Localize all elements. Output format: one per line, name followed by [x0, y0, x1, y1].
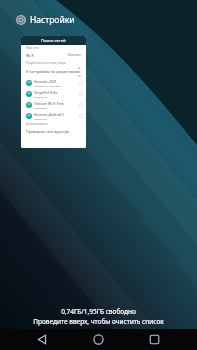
- staticText: Поиск сетей: [41, 38, 66, 44]
- button[interactable]: Проверить сеть вручную: [21, 127, 86, 136]
- staticText: Подключаться к сетям, когда: [26, 61, 66, 65]
- button[interactable]: Home: [85, 329, 111, 350]
- staticText: Keenetic-4941: [34, 79, 57, 84]
- staticText: Включено: [68, 53, 81, 57]
- staticText: Проверить сеть вручную: [26, 129, 70, 134]
- staticText: Настройки: [30, 14, 75, 26]
- staticText: доступно: [78, 66, 81, 77]
- button[interactable]: Поиск сетей: [21, 36, 86, 148]
- staticText: Telecom Wi-Fi Free: [34, 101, 64, 106]
- staticText: Защищено: [34, 95, 48, 98]
- staticText: Сохранено, защищено: [34, 84, 62, 87]
- button[interactable]: Keenetic-Android 5: [21, 110, 86, 121]
- staticText: Защищено: [34, 106, 48, 109]
- staticText: 0,74ГБ/1,95ГБ свободно: [61, 307, 136, 316]
- staticText: К настройкам по роуми связи: [26, 69, 78, 74]
- button[interactable]: Keenetic-4941: [21, 77, 86, 88]
- staticText: Wi-Fi: [26, 53, 35, 58]
- button[interactable]: Recents: [141, 329, 167, 350]
- button[interactable]: Wi-Fi: [21, 51, 86, 59]
- staticText: Сохранено: [34, 117, 48, 120]
- staticText: Keenetic-Android 5: [34, 112, 65, 117]
- button[interactable]: Telecom Wi-Fi Free: [21, 99, 86, 110]
- button[interactable]: Настройки: [16, 14, 75, 26]
- staticText: TargetTel 5Ghz: [34, 90, 58, 95]
- staticText: Проведите вверх, чтобы очистить список: [33, 317, 164, 326]
- button[interactable]: TargetTel 5Ghz: [21, 88, 86, 99]
- staticText: Дополнительно: [26, 122, 48, 126]
- button[interactable]: К настройкам по роуми связи: [21, 66, 86, 77]
- staticText: Мои сети: [26, 46, 39, 50]
- button[interactable]: Back: [29, 329, 55, 350]
